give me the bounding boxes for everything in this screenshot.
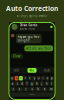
staticText: a (12, 82, 13, 85)
staticText: b (37, 87, 39, 91)
button[interactable]: z (10, 87, 16, 91)
button[interactable]: e (19, 76, 23, 80)
button[interactable]: f (25, 81, 29, 86)
button[interactable]: l (50, 81, 54, 86)
button[interactable]: o (46, 76, 49, 80)
button[interactable]: k (45, 81, 49, 86)
staticText: hey are you free tonight? (18, 35, 40, 42)
button[interactable]: j (40, 81, 44, 86)
button[interactable]: x (16, 87, 22, 91)
staticText: l (51, 82, 52, 85)
button[interactable]: w (15, 76, 18, 80)
staticText: yes! see you then (26, 47, 51, 50)
button[interactable]: q (10, 76, 14, 80)
staticText: y (34, 76, 35, 80)
staticText: x (19, 87, 20, 91)
button[interactable]: g (30, 81, 34, 86)
staticText: r (25, 76, 26, 80)
staticText: m (50, 87, 52, 91)
button[interactable]: b (35, 87, 41, 91)
staticText: d (21, 82, 23, 85)
button[interactable]: c (23, 87, 28, 91)
staticText: i (43, 76, 44, 80)
staticText: tech (44, 69, 50, 72)
staticText: k (46, 82, 47, 85)
staticText: e (20, 76, 22, 80)
button[interactable]: h (35, 81, 39, 86)
staticText: space (29, 94, 34, 95)
staticText: Close (13, 54, 21, 58)
staticText: teh (14, 69, 19, 72)
staticText: p (51, 76, 53, 80)
button[interactable]: i (41, 76, 45, 80)
button[interactable]: y (32, 76, 36, 80)
staticText: j (41, 82, 42, 85)
staticText: h (36, 82, 38, 85)
staticText: c (25, 87, 26, 91)
button[interactable]: r (23, 76, 27, 80)
button[interactable]: p (50, 76, 54, 80)
button[interactable]: t (28, 76, 32, 80)
staticText: s (17, 82, 18, 85)
staticText: z (12, 87, 13, 91)
button[interactable]: a (10, 81, 14, 86)
button[interactable]: Close (11, 53, 23, 59)
staticText: AI Grips Typing Smarter (16, 14, 47, 17)
staticText: u (38, 76, 40, 80)
staticText: Auto Correction (6, 4, 58, 13)
staticText: Active now (19, 27, 34, 30)
button[interactable]: u (37, 76, 40, 80)
button[interactable]: v (29, 87, 35, 91)
button[interactable]: s (15, 81, 19, 86)
staticText: q (11, 76, 13, 80)
staticText: n (44, 87, 46, 91)
button[interactable]: n (42, 87, 47, 91)
staticText: the (29, 69, 34, 72)
button[interactable]: space (10, 92, 54, 97)
staticText: Olivia Garcia (19, 23, 37, 27)
staticText: w (15, 76, 17, 80)
button[interactable]: m (48, 87, 54, 91)
staticText: f (27, 82, 28, 85)
button[interactable]: d (20, 81, 24, 86)
staticText: t (29, 76, 30, 80)
staticText: g (31, 82, 33, 85)
staticText: o (46, 76, 48, 80)
